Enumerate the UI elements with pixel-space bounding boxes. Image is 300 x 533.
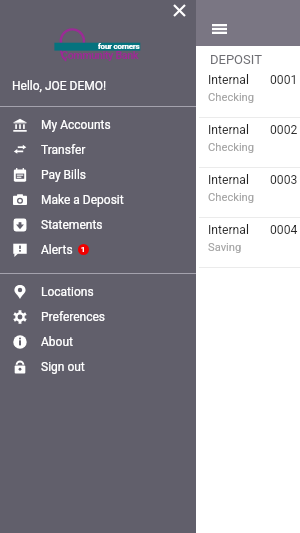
staticText: Transfer [41, 143, 86, 157]
staticText: Checking [208, 91, 255, 104]
button[interactable]: Make a Deposit [0, 187, 196, 212]
staticText: Internal [208, 223, 249, 237]
staticText: Hello, JOE DEMO! [12, 79, 107, 93]
button[interactable]: Open navigation menu [206, 16, 232, 42]
staticText: Internal [208, 123, 249, 137]
staticText: Internal [208, 173, 249, 187]
button[interactable]: Pay Bills [0, 162, 196, 187]
staticText: Pay Bills [41, 168, 87, 182]
button[interactable]: Preferences [0, 304, 196, 329]
staticText: Sign out [41, 360, 85, 374]
button[interactable]: Statements [0, 212, 196, 237]
button[interactable]: About [0, 329, 196, 354]
staticText: Locations [41, 285, 94, 299]
staticText: Internal [208, 73, 249, 87]
button[interactable]: Alerts [0, 237, 196, 262]
staticText: 0001 [270, 73, 298, 87]
button[interactable]: Internal [0, 218, 300, 268]
staticText: 0002 [270, 123, 298, 137]
staticText: DEPOSIT [210, 52, 262, 67]
staticText: Checking [208, 141, 255, 154]
staticText: Checking [208, 191, 255, 204]
staticText: About [41, 335, 73, 349]
staticText: four corners [98, 42, 140, 51]
staticText: 0003 [270, 173, 298, 187]
button[interactable]: Internal [0, 68, 300, 118]
staticText: Community Bank [61, 49, 139, 62]
button[interactable]: Transfer [0, 137, 196, 162]
staticText: Statements [41, 218, 103, 232]
button[interactable]: Sign out [0, 354, 196, 379]
staticText: Make a Deposit [41, 193, 124, 207]
staticText: Alerts [41, 243, 73, 257]
button[interactable]: My Accounts [0, 112, 196, 137]
button[interactable]: Close navigation drawer [166, 0, 192, 23]
staticText: Preferences [41, 310, 106, 324]
staticText: Saving [208, 241, 242, 254]
staticText: 1 [81, 245, 86, 254]
button[interactable]: Internal [0, 118, 300, 168]
staticText: My Accounts [41, 118, 111, 132]
button[interactable]: Internal [0, 168, 300, 218]
staticText: 0004 [270, 223, 298, 237]
button[interactable]: Locations [0, 279, 196, 304]
